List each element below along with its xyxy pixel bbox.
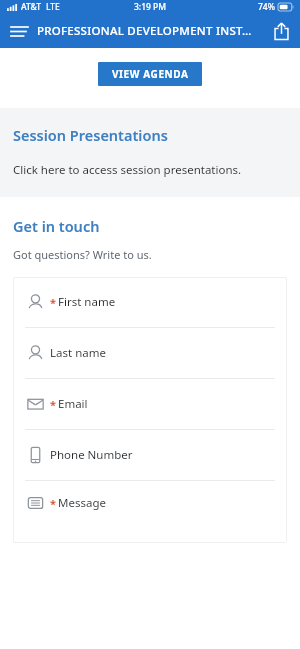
staticText: * bbox=[50, 295, 56, 310]
button[interactable]: Last name bbox=[13, 328, 287, 378]
button[interactable]: Open navigation menu bbox=[4, 16, 34, 46]
staticText: Session Presentations bbox=[13, 125, 168, 145]
button[interactable]: * bbox=[13, 481, 287, 543]
staticText: Got questions? Write to us. bbox=[13, 247, 152, 262]
staticText: Message bbox=[58, 495, 106, 511]
staticText: LTE bbox=[46, 1, 60, 13]
staticText: Email bbox=[58, 396, 88, 412]
staticText: Phone Number bbox=[50, 447, 133, 463]
button[interactable]: Phone Number bbox=[13, 430, 287, 480]
staticText: 74% bbox=[258, 1, 275, 13]
staticText: AT&T bbox=[21, 1, 42, 13]
staticText: Last name bbox=[50, 345, 106, 361]
staticText: VIEW AGENDA bbox=[112, 67, 189, 81]
staticText: * bbox=[50, 397, 56, 412]
staticText: Click here to access session presentatio… bbox=[13, 162, 242, 178]
staticText: Get in touch bbox=[13, 216, 100, 236]
staticText: First name bbox=[58, 294, 116, 310]
button[interactable]: * bbox=[13, 379, 287, 429]
button[interactable]: * bbox=[13, 277, 287, 327]
button[interactable]: VIEW AGENDA bbox=[98, 62, 202, 86]
button[interactable]: Share bbox=[266, 16, 296, 46]
staticText: 3:19 PM bbox=[134, 1, 167, 13]
staticText: PROFESSIONAL DEVELOPMENT INST… bbox=[37, 23, 252, 39]
staticText: * bbox=[50, 496, 56, 511]
button[interactable]: Click here to access session presentatio… bbox=[13, 162, 287, 178]
